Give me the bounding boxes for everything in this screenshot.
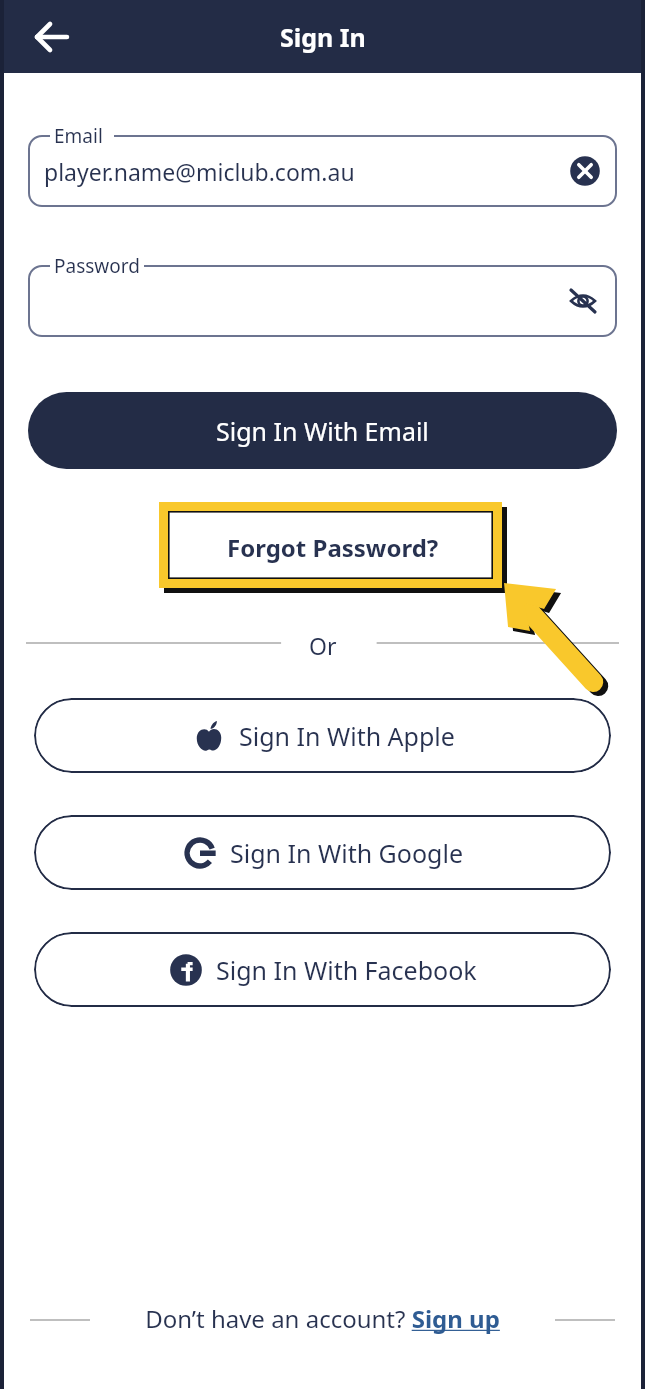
staticText: Sign In With Email [216,414,429,448]
staticText: Don’t have an account? Sign up [145,1302,500,1335]
button[interactable]: Sign In With Google [34,815,611,890]
staticText: Password [54,253,140,279]
button[interactable]: Don’t have an account? Sign up [139,1298,506,1339]
staticText: Forgot Password? [227,531,439,564]
staticText: Sign In With Google [230,836,463,870]
staticText: Email [54,123,103,149]
button[interactable]: Back [30,15,74,59]
button[interactable]: Clear email [565,151,605,191]
button[interactable]: player.name@miclub.com.au [28,135,617,207]
button[interactable]: Forgot Password? [170,513,496,582]
staticText: player.name@miclub.com.au [44,156,355,187]
button[interactable]: Show password [563,281,603,321]
staticText: Sign In [280,20,366,54]
staticText: Sign In With Apple [239,719,455,753]
staticText: Or [309,630,337,656]
button[interactable]: Sign In With Facebook [34,932,611,1007]
button[interactable]: Sign In With Email [28,392,617,469]
button[interactable]: Sign In With Apple [34,698,611,773]
button[interactable]: Show password [28,265,617,337]
staticText: Sign In With Facebook [216,953,477,987]
